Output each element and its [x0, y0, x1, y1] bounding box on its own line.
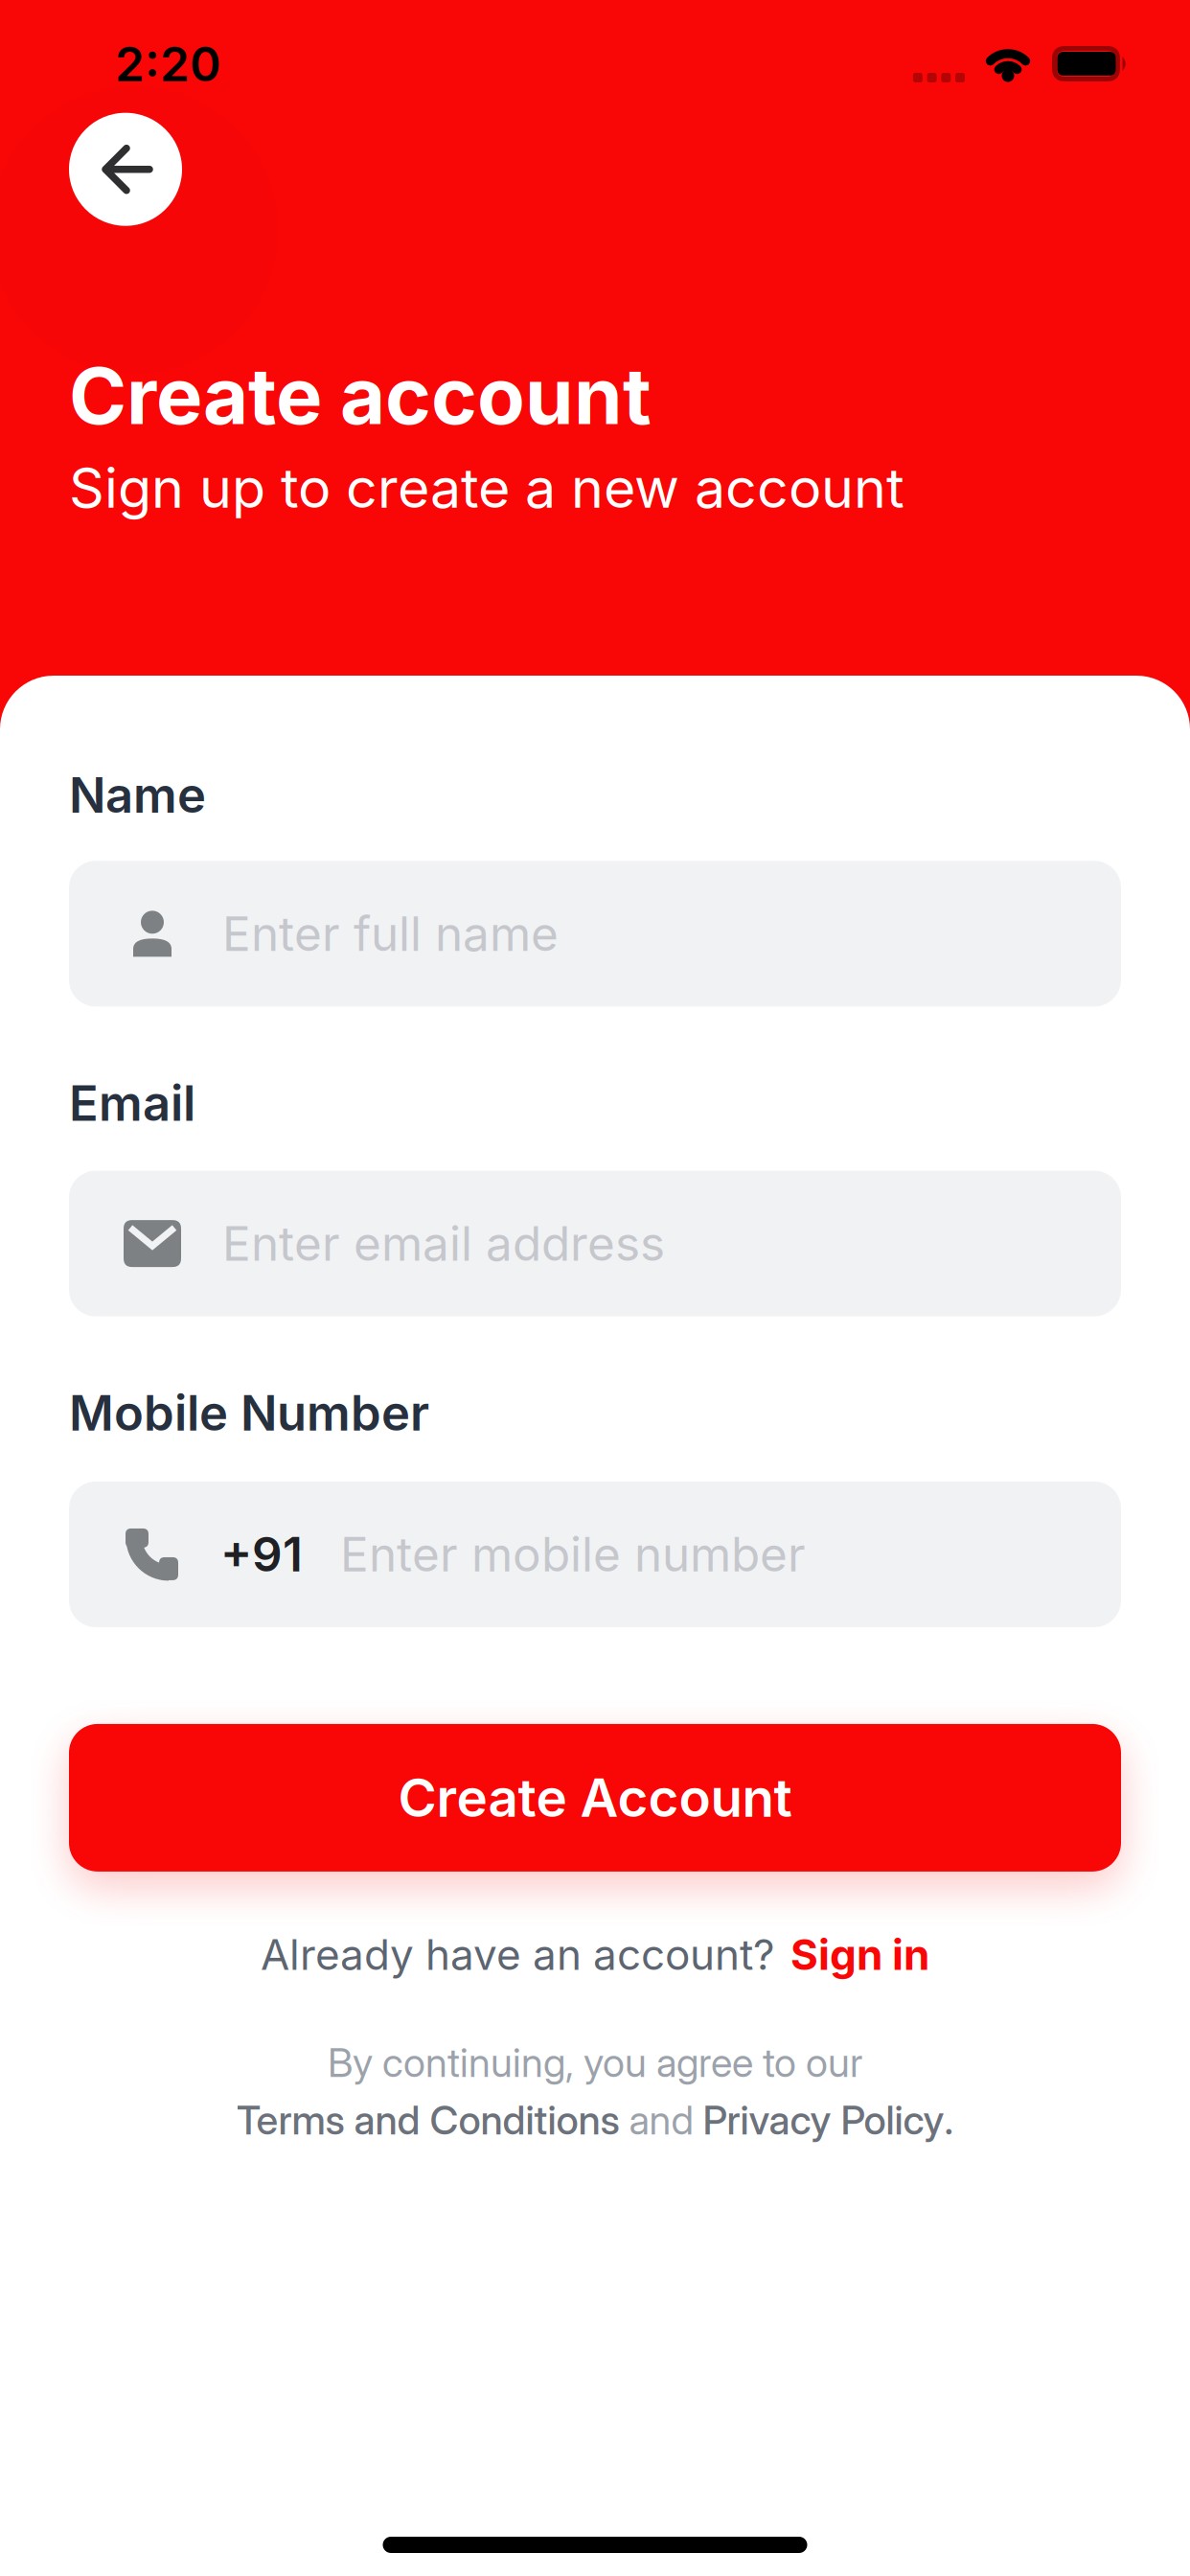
staticText: .: [944, 2096, 954, 2144]
button[interactable]: Sign in: [774, 1929, 929, 1980]
staticText: Create Account: [398, 1766, 792, 1829]
staticText: Name: [69, 766, 206, 824]
staticText: Enter mobile number: [340, 1526, 806, 1583]
staticText: Create account: [69, 349, 652, 443]
button[interactable]: Create Account: [69, 1724, 1121, 1872]
staticText: Enter email address: [222, 1215, 665, 1272]
button[interactable]: Terms and Conditions: [236, 2096, 619, 2144]
staticText: Enter full name: [222, 905, 559, 962]
staticText: Terms and Conditions: [236, 2096, 619, 2144]
staticText: Privacy Policy: [703, 2096, 944, 2144]
staticText: Email: [69, 1074, 195, 1132]
staticText: Sign up to create a new account: [69, 454, 904, 521]
button[interactable]: Back: [69, 113, 182, 226]
staticText: By continuing, you agree to our: [328, 2039, 862, 2086]
staticText: and: [619, 2096, 703, 2144]
staticText: 2:20: [115, 35, 221, 93]
staticText: +91: [220, 1526, 303, 1583]
staticText: Already have an account?: [261, 1929, 774, 1980]
button[interactable]: Privacy Policy: [703, 2096, 944, 2144]
staticText: Mobile Number: [69, 1383, 429, 1442]
staticText: Sign in: [790, 1929, 929, 1980]
